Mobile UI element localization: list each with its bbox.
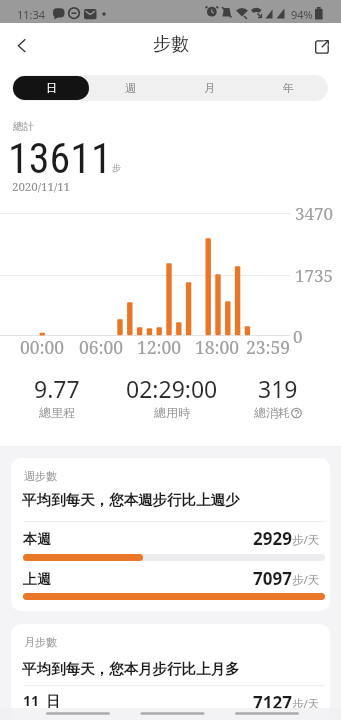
staticText: 319: [258, 373, 298, 404]
staticText: 02:29:00: [126, 373, 218, 404]
staticText: 13611: [8, 134, 112, 183]
staticText: 11 日: [23, 691, 61, 710]
staticText: 2929: [253, 527, 292, 550]
staticText: 月步數: [24, 635, 57, 649]
staticText: 00:00: [20, 335, 65, 359]
staticText: 3470: [295, 202, 334, 225]
staticText: 12:00: [137, 335, 182, 359]
staticText: 06:00: [79, 335, 124, 359]
staticText: 日: [46, 81, 57, 95]
staticText: 7097: [253, 567, 292, 590]
staticText: 平均到每天，您本月步行比上月多: [22, 660, 240, 678]
button[interactable]: 週: [91, 75, 170, 101]
staticText: 總消耗: [254, 405, 290, 420]
staticText: 週: [125, 81, 136, 95]
staticText: 11:34: [17, 7, 46, 22]
staticText: 94%: [291, 7, 313, 22]
button[interactable]: [6, 29, 38, 61]
staticText: 月: [204, 81, 215, 95]
staticText: 2020/11/11: [12, 179, 71, 195]
staticText: 步/天: [292, 572, 320, 588]
button[interactable]: 年: [249, 75, 328, 101]
staticText: 0: [293, 325, 303, 348]
staticText: 總里程: [39, 405, 75, 420]
staticText: 步/天: [292, 532, 320, 548]
staticText: 總用時: [154, 405, 190, 420]
staticText: 週步數: [24, 469, 57, 483]
staticText: 1735: [295, 264, 334, 287]
staticText: 步數: [153, 33, 189, 56]
staticText: 7127: [253, 691, 292, 714]
staticText: 總計: [13, 120, 34, 133]
staticText: 年: [283, 81, 294, 95]
staticText: 平均到每天，您本週步行比上週少: [22, 491, 240, 509]
staticText: 步/天: [292, 696, 320, 712]
staticText: 23:59: [246, 335, 291, 359]
staticText: 上週: [23, 571, 51, 589]
staticText: 9.77: [34, 373, 80, 404]
staticText: 步: [112, 162, 121, 173]
button[interactable]: 月: [170, 75, 249, 101]
staticText: 18:00: [195, 335, 240, 359]
staticText: 本週: [23, 531, 51, 549]
button[interactable]: [306, 31, 338, 63]
button[interactable]: 日: [13, 76, 89, 100]
